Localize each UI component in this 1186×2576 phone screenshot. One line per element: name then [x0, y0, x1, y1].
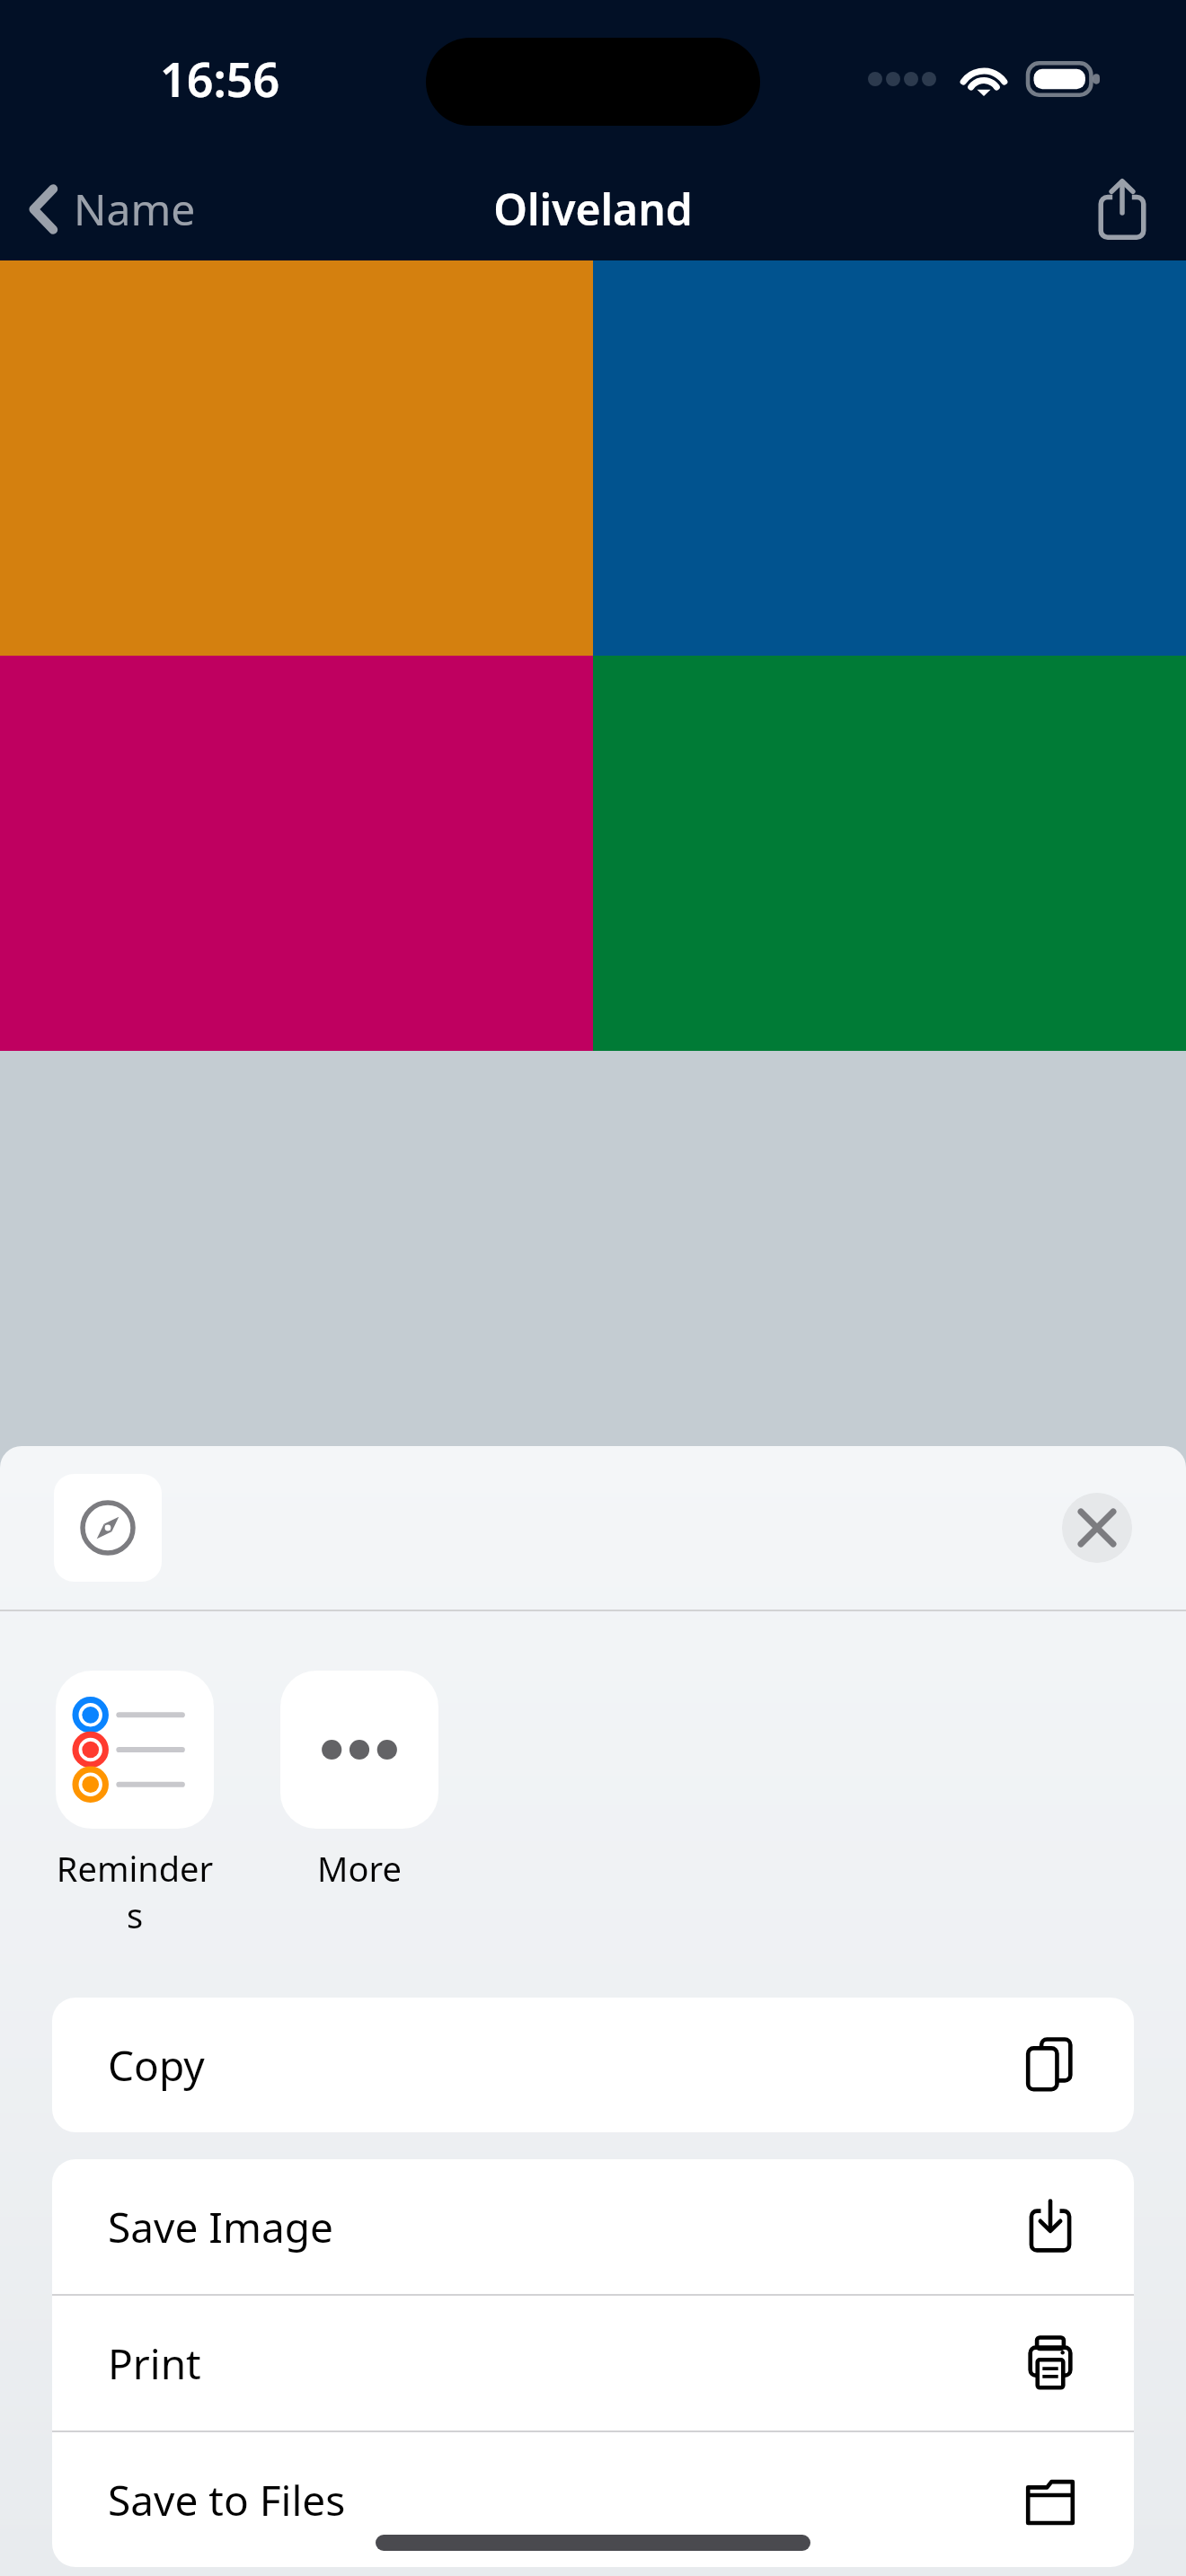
staticText: Copy: [108, 2037, 1022, 2094]
button[interactable]: Edit Actions…: [0, 2567, 1186, 2576]
button[interactable]: Reminders: [56, 1671, 214, 1938]
button[interactable]: More: [280, 1671, 438, 1892]
staticText: Name: [74, 180, 196, 238]
button[interactable]: Name: [0, 167, 214, 251]
staticText: Reminders: [56, 1845, 214, 1938]
button[interactable]: Safari: [54, 1474, 162, 1582]
staticText: 16:56: [160, 47, 280, 110]
staticText: Print: [108, 2335, 1022, 2392]
staticText: Save to Files: [108, 2472, 1022, 2528]
staticText: Save Image: [108, 2199, 1022, 2255]
button[interactable]: Save to Files: [52, 2432, 1134, 2567]
staticText: Edit Actions…: [108, 2567, 367, 2576]
staticText: More: [317, 1845, 402, 1892]
staticText: Oliveland: [493, 180, 693, 238]
button[interactable]: Close: [1062, 1493, 1132, 1563]
button[interactable]: Copy: [52, 1998, 1134, 2132]
button[interactable]: Print: [52, 2296, 1134, 2430]
button[interactable]: Save Image: [52, 2159, 1134, 2294]
button[interactable]: Share: [1087, 168, 1157, 251]
